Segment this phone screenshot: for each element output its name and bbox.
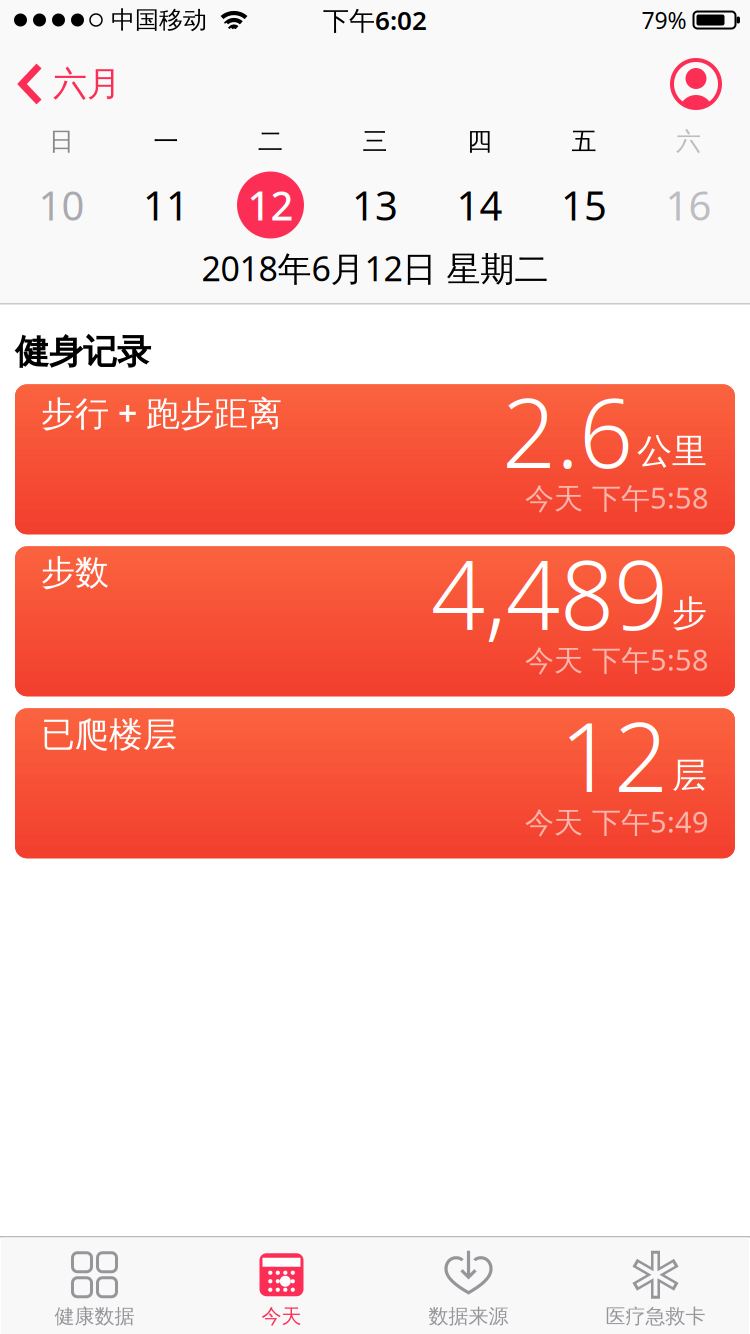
staticText: 健康数据	[54, 1304, 134, 1329]
staticText: 层	[672, 753, 707, 797]
button[interactable]: 10	[9, 161, 114, 249]
button[interactable]: 13	[323, 161, 427, 249]
staticText: 16	[665, 178, 711, 232]
button[interactable]: 健康数据	[1, 1238, 188, 1334]
staticText: 公里	[637, 429, 707, 473]
staticText: 医疗急救卡	[605, 1304, 705, 1329]
staticText: 今天 下午5:58	[525, 478, 709, 517]
staticText: 13	[352, 178, 398, 232]
staticText: 数据来源	[428, 1304, 508, 1329]
staticText: 五	[571, 126, 596, 157]
staticText: 79%	[641, 4, 686, 36]
staticText: 四	[467, 126, 492, 157]
staticText: 健身记录	[15, 330, 151, 373]
button[interactable]: 健康资料	[672, 60, 750, 108]
staticText: 二	[258, 126, 283, 157]
button[interactable]: 12	[218, 161, 323, 249]
button[interactable]: 六月	[0, 63, 121, 105]
staticText: 4,489	[431, 528, 668, 658]
staticText: 日	[49, 126, 74, 157]
button[interactable]: 16	[636, 161, 741, 249]
staticText: 12	[560, 690, 668, 820]
staticText: 步数	[41, 551, 109, 594]
button[interactable]: 11	[114, 161, 218, 249]
button[interactable]: 步行 + 跑步距离	[15, 384, 735, 534]
staticText: 10	[38, 178, 84, 232]
staticText: 14	[456, 178, 502, 232]
button[interactable]: 步数	[15, 546, 735, 696]
staticText: 六月	[53, 63, 121, 105]
staticText: 一	[153, 126, 178, 157]
button[interactable]: 14	[427, 161, 532, 249]
staticText: 12	[247, 178, 293, 232]
staticText: 今天	[261, 1304, 301, 1329]
staticText: 步行 + 跑步距离	[41, 389, 282, 436]
button[interactable]: 数据来源	[375, 1238, 562, 1334]
staticText: 2.6	[502, 366, 633, 496]
staticText: 今天 下午5:58	[525, 640, 709, 679]
staticText: 步	[672, 591, 707, 635]
staticText: 三	[362, 126, 387, 157]
staticText: 15	[561, 178, 607, 232]
button[interactable]: 医疗急救卡	[562, 1238, 749, 1334]
staticText: 六	[676, 126, 701, 157]
staticText: 今天 下午5:49	[525, 802, 709, 841]
staticText: 2018年6月12日 星期二	[201, 245, 548, 291]
staticText: 已爬楼层	[41, 713, 177, 756]
button[interactable]: 已爬楼层	[15, 708, 735, 858]
button[interactable]: 15	[532, 161, 636, 249]
staticText: 下午6:02	[323, 2, 427, 38]
staticText: 11	[143, 178, 189, 232]
button[interactable]: 今天	[188, 1238, 375, 1334]
staticText: 中国移动	[111, 5, 207, 35]
